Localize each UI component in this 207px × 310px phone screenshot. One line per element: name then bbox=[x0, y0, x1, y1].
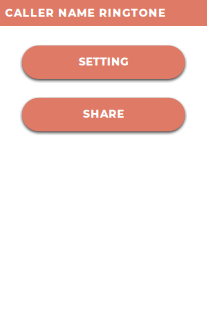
staticText: SETTING bbox=[79, 55, 128, 68]
staticText: CALLER NAME RINGTONE bbox=[5, 6, 165, 19]
button[interactable]: SETTING bbox=[22, 45, 185, 79]
staticText: SHARE bbox=[83, 107, 124, 120]
button[interactable]: SHARE bbox=[22, 98, 185, 131]
